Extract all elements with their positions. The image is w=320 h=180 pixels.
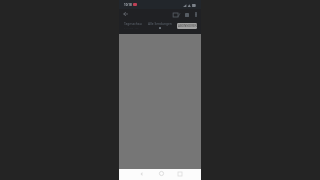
- button[interactable]: More options: [192, 10, 200, 18]
- button[interactable]: Back: [120, 9, 130, 19]
- staticText: Alle Sendungen: [148, 22, 172, 26]
- button[interactable]: Alle Sendungen: [148, 22, 172, 29]
- staticText: ABONNIEREN: [178, 24, 197, 28]
- button[interactable]: Cast: [172, 11, 181, 18]
- button[interactable]: ABONNIEREN: [177, 23, 197, 29]
- button[interactable]: Home: [156, 169, 166, 178]
- staticText: 10:18: [124, 3, 132, 7]
- button[interactable]: Back: [136, 169, 146, 178]
- button[interactable]: Recents: [175, 169, 185, 178]
- staticText: Tagesschau: [124, 22, 142, 26]
- button[interactable]: Library: [183, 11, 191, 19]
- button[interactable]: Tagesschau: [124, 22, 142, 30]
